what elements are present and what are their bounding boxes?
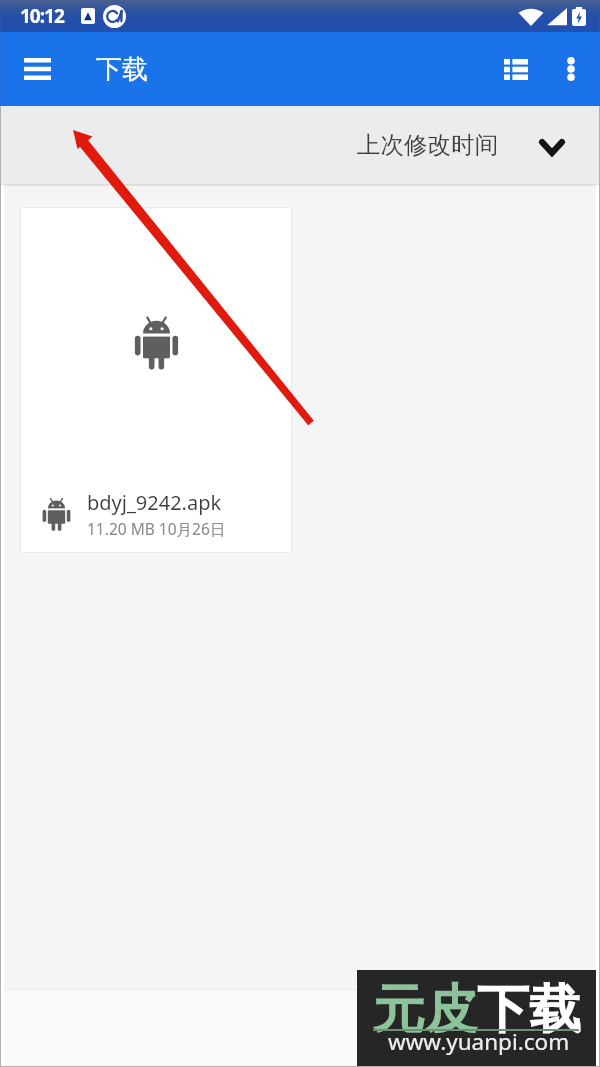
staticText: 上次修改时间	[357, 130, 498, 160]
staticText: 下载	[477, 977, 581, 1043]
staticText: www.yuanpi.com	[388, 1026, 570, 1057]
button[interactable]: bdyj_9242.apk	[20, 207, 292, 553]
staticText: bdyj_9242.apk	[87, 489, 222, 516]
staticText: 下载	[96, 53, 148, 86]
staticText: 元皮	[373, 977, 477, 1043]
button[interactable]: 上次修改时间	[345, 118, 580, 172]
staticText: 10:12	[20, 3, 64, 29]
button[interactable]: Menu	[0, 39, 74, 99]
button[interactable]: More options	[546, 44, 595, 94]
button[interactable]: List view	[486, 44, 545, 94]
staticText: 11.20 MB 10月26日	[87, 518, 226, 539]
